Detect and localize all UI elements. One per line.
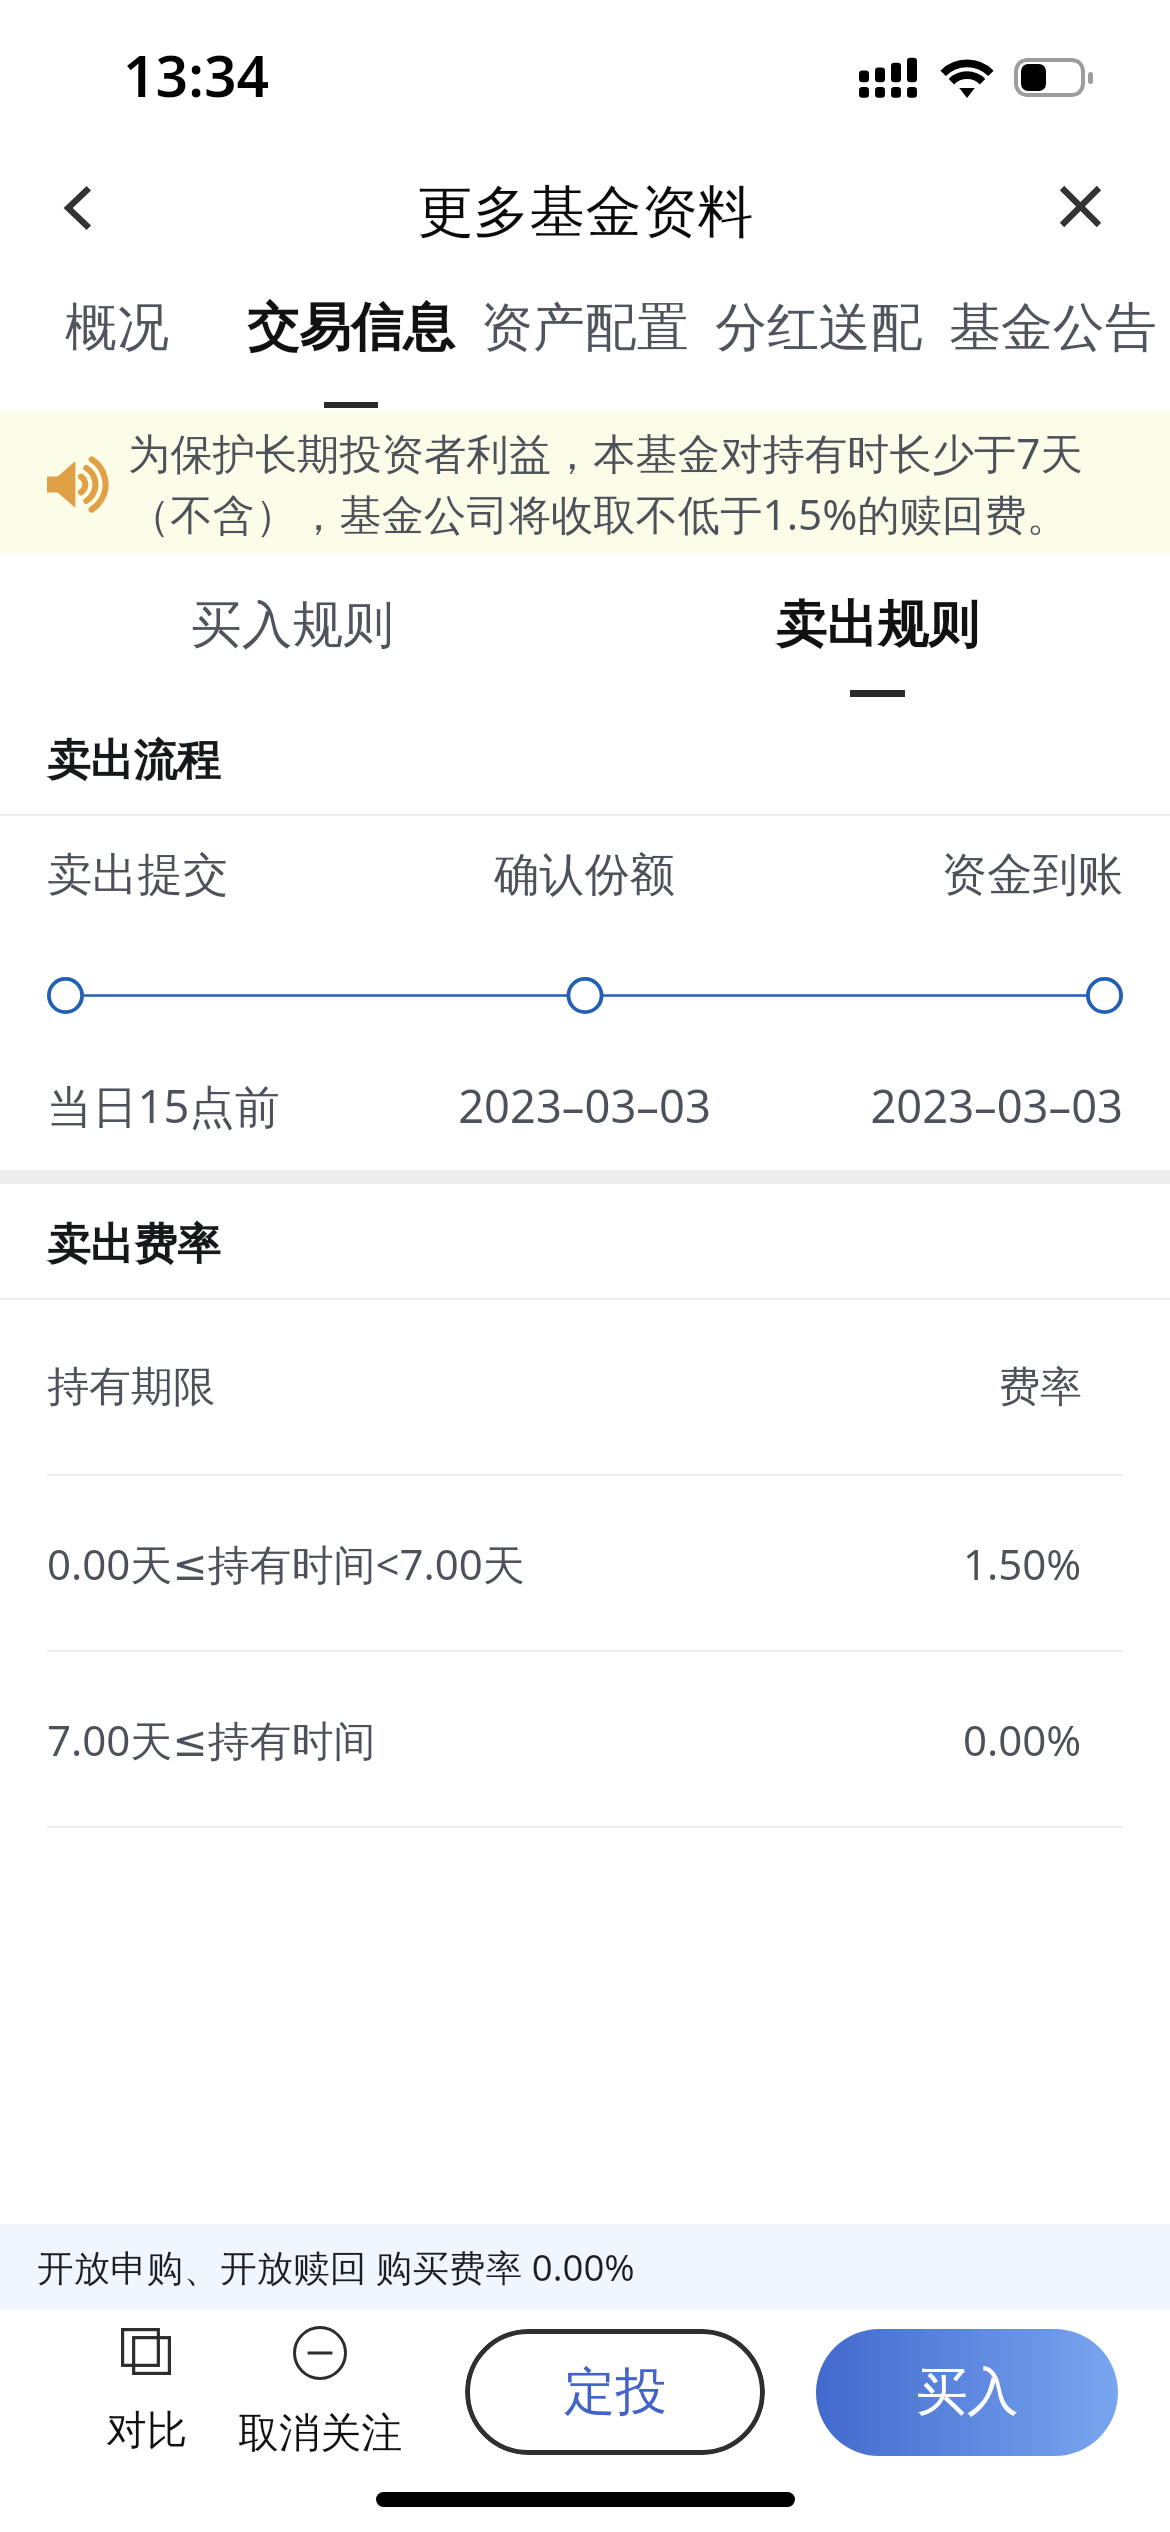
staticText: 13:34 [123,36,270,114]
button[interactable]: 取消关注 [233,2326,407,2459]
staticText: 卖出规则 [776,593,979,657]
staticText: 卖出流程 [47,733,221,788]
staticText: 当日15点前 [47,1075,405,1137]
staticText: 更多基金资料 [417,177,754,248]
staticText: 7.00天≤持有时间 [47,1711,376,1768]
staticText: 基金公告 [949,295,1157,360]
staticText: 资金到账 [764,846,1123,903]
button[interactable]: 交易信息 [234,280,468,408]
staticText: 0.00天≤持有时间<7.00天 [47,1535,525,1592]
staticText: 为保护长期投资者利益，本基金对持有时长少于7天（不含），基金公司将收取不低于1.… [128,424,1110,542]
staticText: 卖出提交 [47,846,405,903]
staticText: 分红送配 [715,295,923,360]
button[interactable]: 基金公告 [936,280,1170,402]
staticText: 取消关注 [238,2407,403,2459]
staticText: 买入 [916,2360,1019,2425]
staticText: 费率 [998,1361,1082,1414]
button[interactable]: 买入 [816,2329,1118,2456]
button[interactable]: 卖出规则 [585,553,1170,697]
button[interactable]: 概况 [0,280,234,402]
staticText: 0.00% [963,1711,1082,1768]
staticText: 买入规则 [191,593,394,657]
staticText: 1.50% [963,1535,1082,1592]
button[interactable]: 对比 [86,2328,206,2456]
button[interactable]: Back [21,156,129,264]
staticText: 对比 [106,2405,187,2456]
staticText: 概况 [65,295,169,360]
staticText: 持有期限 [47,1361,215,1414]
staticText: 开放申购、开放赎回 购买费率 0.00% [37,2242,635,2292]
button[interactable]: 资产配置 [468,280,702,402]
staticText: 2023–03–03 [764,1075,1123,1137]
button[interactable]: 买入规则 [0,553,585,690]
staticText: 确认份额 [405,846,764,903]
button[interactable]: 分红送配 [702,280,936,402]
staticText: 2023–03–03 [405,1075,764,1137]
button[interactable]: 定投 [465,2329,765,2455]
staticText: 资产配置 [481,295,689,360]
staticText: 交易信息 [247,295,455,360]
staticText: 定投 [564,2360,667,2425]
button[interactable]: Close [1020,150,1140,270]
staticText: 卖出费率 [47,1217,221,1272]
